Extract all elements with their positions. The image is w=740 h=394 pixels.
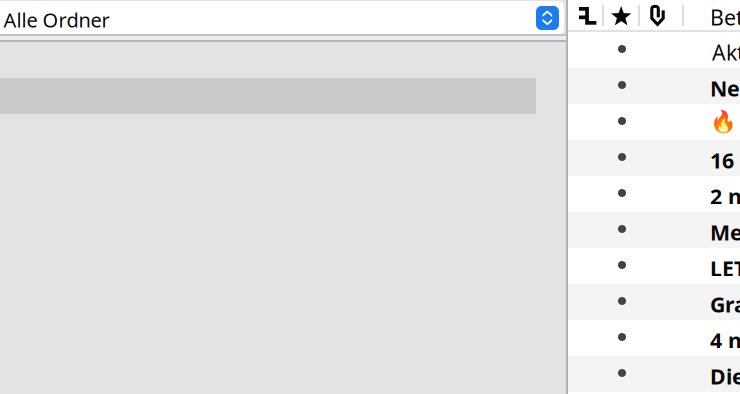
button[interactable]: Die	[568, 356, 740, 392]
button[interactable]: Sort by attachment	[568, 0, 586, 24]
staticText: Gra	[710, 290, 740, 318]
button[interactable]: Sort by flag	[568, 0, 589, 21]
staticText: Die	[710, 362, 740, 390]
button[interactable]: 2 n	[568, 176, 740, 212]
button[interactable]: Sort by reply status	[568, 0, 586, 18]
staticText: Bet	[710, 3, 740, 31]
button[interactable]: 16	[568, 140, 740, 176]
button[interactable]: Akt	[568, 32, 740, 68]
staticText: LET	[710, 254, 740, 282]
button[interactable]: LET	[568, 248, 740, 284]
staticText: Neu	[710, 74, 740, 102]
staticText: 🔥	[710, 110, 737, 134]
staticText: 16	[710, 146, 740, 174]
button[interactable]: Me	[568, 212, 740, 248]
button[interactable]: 🔥	[568, 104, 740, 140]
button[interactable]: Alle Ordner	[0, 1, 564, 34]
button[interactable]: Neu	[568, 68, 740, 104]
button[interactable]: Gra	[568, 284, 740, 320]
staticText: 2 n	[710, 182, 740, 210]
button[interactable]: Bet	[568, 0, 602, 28]
staticText: Alle Ordner	[3, 6, 109, 33]
staticText: Akt	[712, 38, 740, 66]
staticText: Me	[710, 218, 740, 246]
staticText: 4 n	[710, 326, 740, 354]
button[interactable]: 4 n	[568, 320, 740, 356]
